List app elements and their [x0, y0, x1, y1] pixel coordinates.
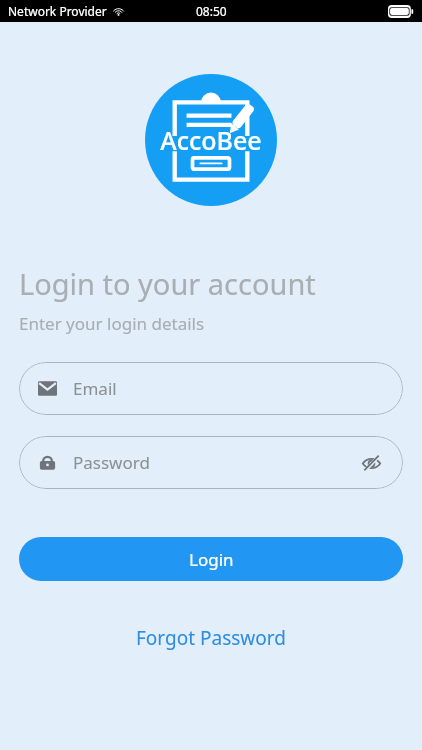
staticText: Email	[73, 377, 117, 400]
button[interactable]: Password	[19, 436, 403, 489]
button[interactable]: Email	[19, 362, 403, 415]
button[interactable]: Login	[19, 537, 403, 581]
staticText: Login	[189, 548, 234, 571]
staticText: Login to your account	[19, 264, 316, 303]
staticText: Enter your login details	[19, 312, 205, 335]
staticText: Forgot Password	[136, 625, 286, 651]
button[interactable]: Show password	[358, 450, 384, 476]
staticText: Network Provider	[8, 3, 107, 19]
button[interactable]: Forgot Password	[128, 621, 294, 655]
staticText: 08:50	[196, 3, 227, 19]
staticText: AccoBee	[160, 123, 262, 157]
staticText: Password	[73, 451, 150, 474]
